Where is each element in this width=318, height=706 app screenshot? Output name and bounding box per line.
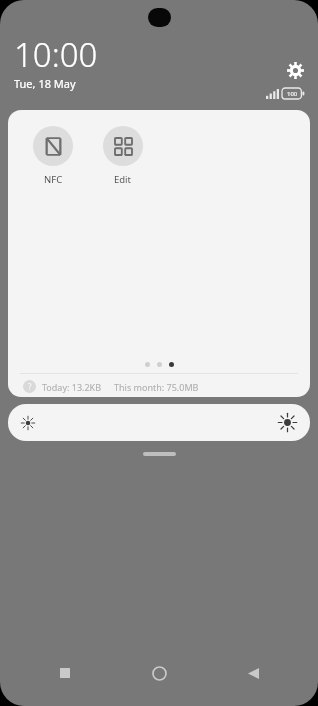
button[interactable]: Recents: [48, 656, 82, 690]
staticText: This month: 75.0MB: [114, 381, 199, 393]
staticText: 100: [287, 90, 298, 98]
staticText: ?: [28, 381, 32, 392]
button[interactable]: Settings: [282, 57, 308, 83]
button[interactable]: Brightness: [8, 404, 310, 441]
staticText: 10:00: [14, 32, 98, 77]
staticText: Today: 13.2KB: [42, 381, 102, 393]
staticText: Tue, 18 May: [14, 76, 76, 91]
button[interactable]: Back: [236, 656, 270, 690]
staticText: NFC: [44, 173, 63, 186]
staticText: Edit: [114, 173, 132, 186]
button[interactable]: Edit tiles: [99, 126, 147, 186]
button[interactable]: Home: [142, 656, 176, 690]
button[interactable]: NFC: [29, 126, 77, 186]
